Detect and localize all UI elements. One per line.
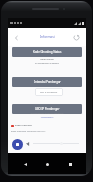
button[interactable]: Stop playback: [12, 139, 23, 150]
button[interactable]: Back: [19, 158, 31, 170]
staticText: Kode Ghosting Status: [33, 50, 62, 54]
staticText: Radio Indonesia Streaming Live 24/7: [11, 130, 46, 133]
staticText: Informasi: [40, 35, 55, 39]
staticText: Interaksi Pendengar: [34, 80, 61, 84]
staticText: Radio Indonesia: [15, 124, 32, 127]
button[interactable]: Kode Ghosting Status: [12, 47, 82, 57]
button[interactable]: Interaksi Pendengar: [12, 77, 82, 87]
staticText: 30 Pendengar di 96kbps: [8, 62, 86, 65]
button[interactable]: Back: [11, 32, 22, 43]
staticText: Siaran Online: [8, 58, 86, 61]
staticText: Mendengarkan 30 dari 34 Pendengar: [8, 112, 86, 115]
button[interactable]: GEO IP Pendengar: [35, 88, 63, 96]
button[interactable]: Home: [41, 158, 53, 170]
staticText: GEO IP Pendengar: [35, 107, 60, 111]
staticText: GEO IP Pendengar: [40, 91, 58, 94]
button[interactable]: Recent apps: [64, 158, 76, 170]
staticText: Selengkapnya: [8, 116, 86, 119]
button[interactable]: GEO IP Pendengar: [12, 104, 82, 114]
button[interactable]: Refresh: [71, 32, 82, 43]
